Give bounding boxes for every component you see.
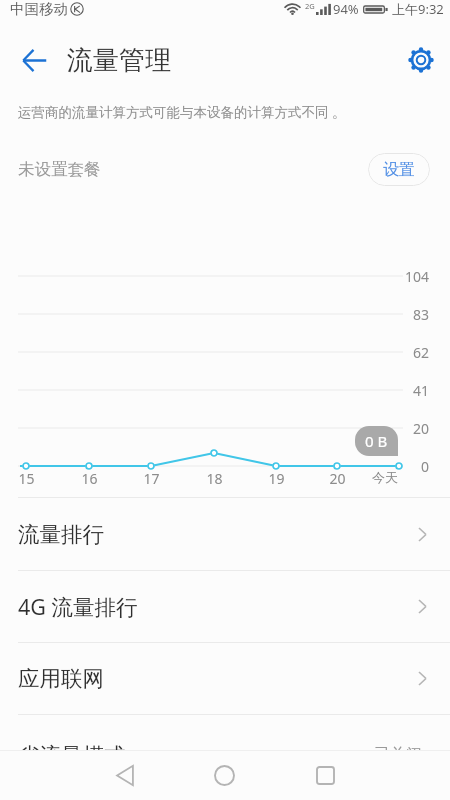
- staticText: 83: [413, 305, 430, 324]
- staticText: 0 B: [365, 431, 388, 451]
- staticText: 运营商的流量计算方式可能与本设备的计算方式不同 。: [18, 103, 346, 121]
- staticText: 41: [413, 381, 430, 400]
- staticText: 16: [81, 469, 98, 488]
- button[interactable]: Back: [95, 750, 155, 800]
- staticText: 20: [413, 419, 430, 438]
- staticText: 未设置套餐: [18, 159, 101, 180]
- staticText: 94%: [333, 0, 359, 18]
- button[interactable]: Back: [13, 39, 55, 81]
- staticText: 已关闭: [374, 745, 422, 765]
- staticText: 17: [143, 469, 160, 488]
- button[interactable]: 流量排行: [0, 498, 450, 570]
- staticText: 18: [206, 469, 223, 488]
- button[interactable]: 设置: [368, 153, 430, 186]
- button[interactable]: Recents: [295, 750, 355, 800]
- button[interactable]: Home: [194, 750, 254, 800]
- button[interactable]: 4G 流量排行: [0, 571, 450, 642]
- button[interactable]: 省流量模式: [0, 715, 450, 795]
- staticText: 设置: [383, 160, 415, 180]
- staticText: 19: [268, 469, 285, 488]
- staticText: 4G 流量排行: [18, 592, 138, 621]
- staticText: 应用联网: [18, 665, 104, 692]
- button[interactable]: Settings: [400, 39, 442, 81]
- staticText: 今天: [372, 469, 398, 485]
- staticText: 20: [329, 469, 346, 488]
- staticText: 上午9:32: [392, 0, 444, 18]
- staticText: 0: [421, 457, 430, 476]
- staticText: 15: [18, 469, 35, 488]
- staticText: 2G: [305, 1, 315, 11]
- staticText: 62: [413, 343, 430, 362]
- staticText: 流量排行: [18, 521, 104, 548]
- staticText: 流量管理: [67, 44, 171, 77]
- staticText: 中国移动: [10, 0, 68, 18]
- button[interactable]: 应用联网: [0, 643, 450, 714]
- staticText: 省流量模式: [18, 742, 126, 769]
- staticText: 104: [405, 267, 430, 286]
